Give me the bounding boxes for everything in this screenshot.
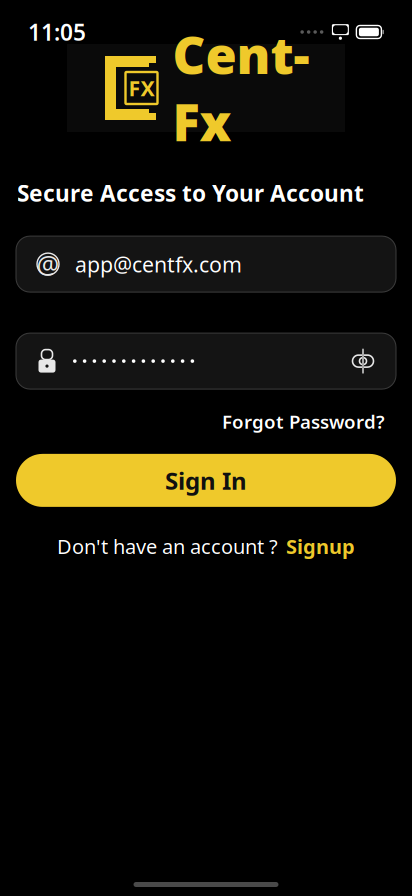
- staticText: Secure Access to Your Account: [17, 178, 364, 208]
- staticText: Signup: [286, 533, 355, 559]
- staticText: 11:05: [28, 17, 86, 47]
- staticText: Forgot Password?: [222, 409, 385, 434]
- button[interactable]: @: [0, 236, 412, 292]
- staticText: app@centfx.com: [75, 250, 242, 278]
- button[interactable]: Forgot Password?: [222, 405, 385, 438]
- staticText: CentFx: [172, 21, 309, 155]
- staticText: Don't have an account ?: [57, 533, 278, 559]
- button[interactable]: Signup: [286, 533, 355, 559]
- staticText: FX: [128, 74, 154, 102]
- button[interactable]: Sign In: [0, 454, 412, 507]
- button[interactable]: [0, 333, 412, 389]
- staticText: Sign In: [165, 464, 247, 496]
- staticText: @: [36, 247, 59, 281]
